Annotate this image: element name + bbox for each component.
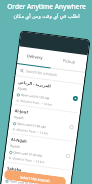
button[interactable]: Select the branch [4,169,66,184]
staticText: Riyadh [14,115,24,120]
staticText: Open until 01:00 AM [13,150,42,158]
button[interactable]: Al-Jouf [8,105,80,142]
staticText: distance from ~ 14 km [20,99,53,107]
staticText: العزيزية - الرياض [18,79,52,89]
staticText: Riyadh [17,86,28,92]
button[interactable]: Pickup [51,51,88,72]
other: Select branch [65,153,71,159]
staticText: distance from ~ 14 km [16,127,49,136]
staticText: Delivery [27,53,43,60]
staticText: Search for a branch [26,68,58,77]
staticText: Al-Nijah [11,137,27,144]
other: Select branch [69,124,74,130]
staticText: Open until 01:00 AM [17,121,46,129]
staticText: distance from ~ 14 km [12,156,45,165]
staticText: Pickup [62,58,76,65]
staticText: Select the branch [20,174,50,183]
staticText: Riyadh [10,144,20,149]
button[interactable]: العزيزية - الرياض [11,76,84,114]
other: Select branch [73,96,78,101]
other: Select branch [61,182,67,184]
staticText: Al-Jouf [14,108,29,115]
staticText: Order Anytime Anywhere [7,2,86,11]
button[interactable]: Sakaka [0,162,72,184]
staticText: Sakaka [7,166,22,172]
staticText: Open until 01:00 AM [21,93,50,101]
staticText: اطلب في أي وقت ومن أي مكان [13,13,80,20]
button[interactable]: Delivery [17,46,53,67]
button[interactable]: Al-Nijah [4,133,76,171]
staticText: Open until 01:00 AM [9,179,39,184]
